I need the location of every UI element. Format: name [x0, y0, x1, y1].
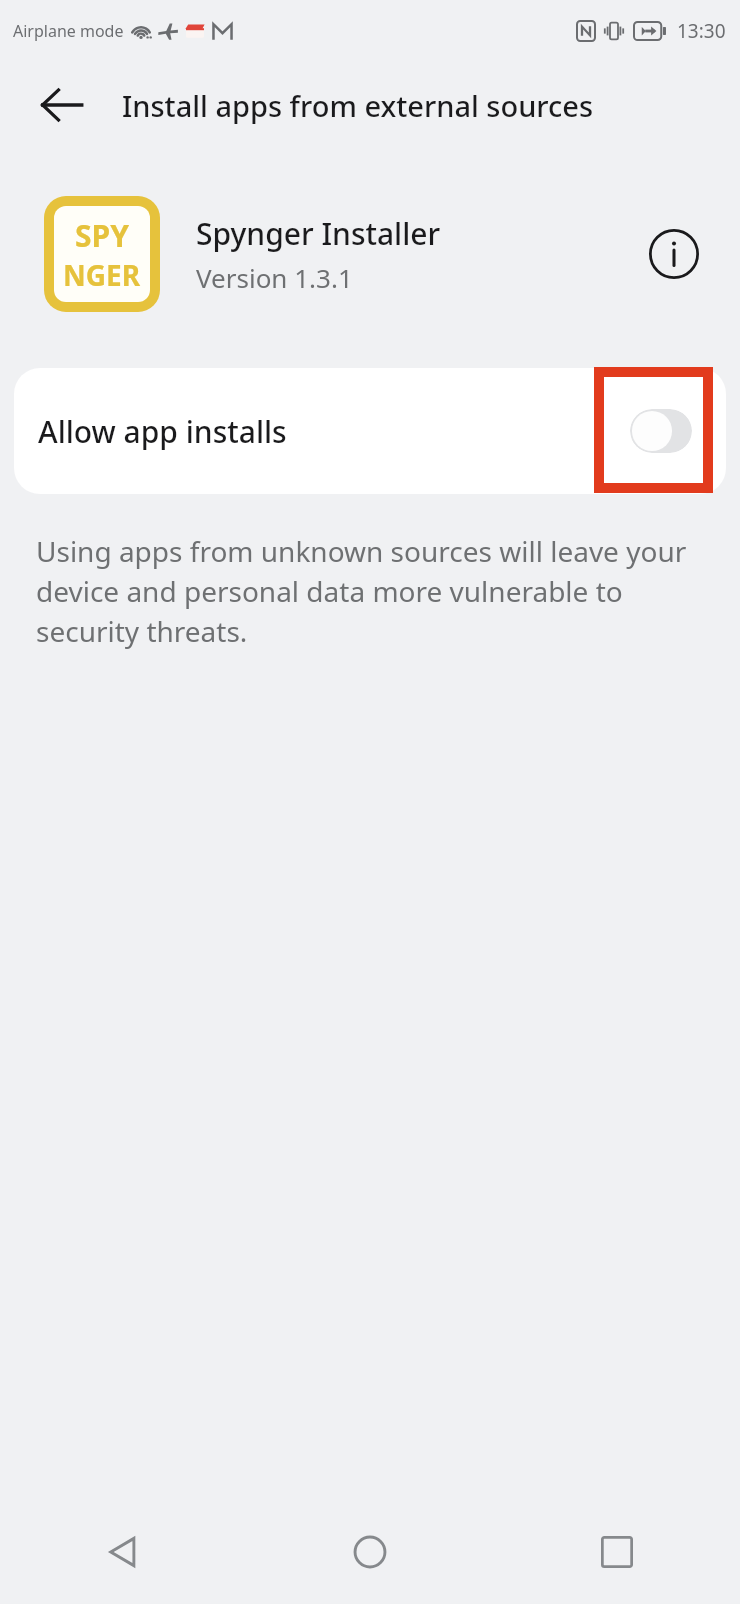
button[interactable]: Allow app installs toggle [630, 409, 692, 453]
staticText: Using apps from unknown sources will lea… [36, 532, 706, 651]
button[interactable]: Back [26, 69, 98, 141]
staticText: Install apps from external sources [122, 86, 594, 125]
staticText: SPY [75, 215, 129, 256]
button[interactable]: Allow app installs [14, 368, 726, 494]
button[interactable]: Recent apps [493, 1500, 740, 1604]
staticText: NGER [63, 256, 141, 294]
button[interactable]: App info [642, 222, 706, 286]
button[interactable]: Back [0, 1500, 246, 1604]
staticText: Allow app installs [38, 411, 630, 452]
staticText: Spynger Installer [196, 213, 441, 254]
staticText: Version 1.3.1 [196, 260, 353, 295]
button[interactable]: Home [246, 1500, 493, 1604]
staticText: 13:30 [677, 18, 726, 44]
staticText: Airplane mode [13, 20, 124, 42]
